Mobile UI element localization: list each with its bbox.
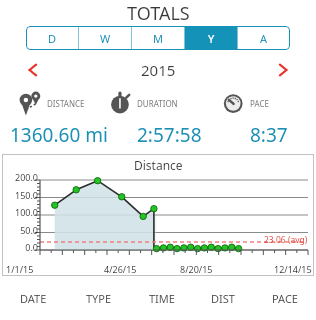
staticText: 100.0 (14, 206, 38, 218)
staticText: A (260, 31, 268, 46)
staticText: 1/1/15 (6, 263, 34, 275)
button[interactable]: PACE (253, 277, 316, 320)
staticText: PACE (250, 98, 269, 109)
button[interactable]: M (132, 26, 184, 50)
staticText: 23.06 (avg) (264, 234, 308, 246)
staticText: TYPE (86, 291, 112, 306)
staticText: 0.0 (25, 241, 38, 253)
staticText: DATE (20, 291, 47, 306)
staticText: 2015 (141, 60, 176, 80)
button[interactable]: DURATION (108, 90, 221, 116)
button[interactable]: DATE (0, 277, 67, 320)
button[interactable]: A (238, 26, 290, 50)
staticText: 2:57:58 (137, 122, 202, 148)
button[interactable]: DISTANCE (16, 88, 108, 118)
staticText: 4/26/15 (104, 263, 137, 275)
staticText: 12/14/15 (274, 263, 312, 275)
staticText: D (48, 31, 57, 46)
button[interactable]: DIST (193, 277, 253, 320)
button[interactable]: Next year (272, 59, 294, 81)
button[interactable]: Y (185, 26, 237, 50)
staticText: 200.0 (14, 171, 38, 183)
staticText: W (100, 31, 111, 46)
staticText: M (153, 31, 163, 46)
button[interactable]: TIME (130, 277, 193, 320)
staticText: TOTALS (127, 1, 190, 26)
staticText: 8:37 (250, 122, 288, 148)
button[interactable]: TYPE (67, 277, 130, 320)
button[interactable]: D (26, 26, 78, 50)
staticText: 50.0 (20, 224, 38, 236)
button[interactable]: Previous year (22, 59, 44, 81)
staticText: 1360.60 mi (10, 122, 108, 148)
staticText: Y (208, 31, 215, 46)
staticText: DIST (211, 291, 235, 306)
staticText: 8/20/15 (180, 263, 213, 275)
staticText: PACE (272, 291, 298, 306)
staticText: DISTANCE (47, 98, 85, 109)
staticText: DURATION (137, 98, 178, 109)
button[interactable]: PACE (221, 90, 316, 116)
button[interactable]: W (79, 26, 131, 50)
staticText: TIME (149, 291, 175, 306)
staticText: 150.0 (14, 189, 38, 201)
staticText: Distance (134, 157, 183, 173)
